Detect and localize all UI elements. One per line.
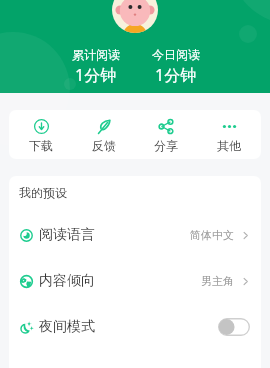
- staticText: 简体中文: [190, 228, 234, 242]
- button[interactable]: Share: [136, 113, 196, 157]
- button[interactable]: 内容倾向: [9, 258, 261, 304]
- button[interactable]: 阅读语言: [9, 212, 261, 258]
- staticText: 分享: [154, 138, 178, 153]
- staticText: 下载: [29, 138, 53, 153]
- button[interactable]: More: [199, 113, 259, 157]
- staticText: 反馈: [92, 138, 116, 153]
- button[interactable]: Download: [11, 113, 71, 157]
- staticText: 1分钟: [155, 64, 197, 86]
- staticText: 1分钟: [75, 64, 117, 86]
- button[interactable]: Night mode toggle: [218, 318, 250, 336]
- button[interactable]: Feedback: [74, 113, 134, 157]
- button[interactable]: 夜间模式: [9, 304, 261, 350]
- staticText: 其他: [217, 138, 241, 153]
- staticText: 阅读语言: [39, 226, 95, 244]
- staticText: 内容倾向: [39, 272, 95, 290]
- staticText: 今日阅读: [152, 47, 200, 62]
- staticText: 夜间模式: [39, 318, 95, 336]
- staticText: 男主角: [201, 274, 234, 288]
- staticText: 累计阅读: [72, 47, 120, 62]
- button[interactable]: Avatar: [112, 0, 158, 33]
- staticText: 我的预设: [19, 185, 67, 200]
